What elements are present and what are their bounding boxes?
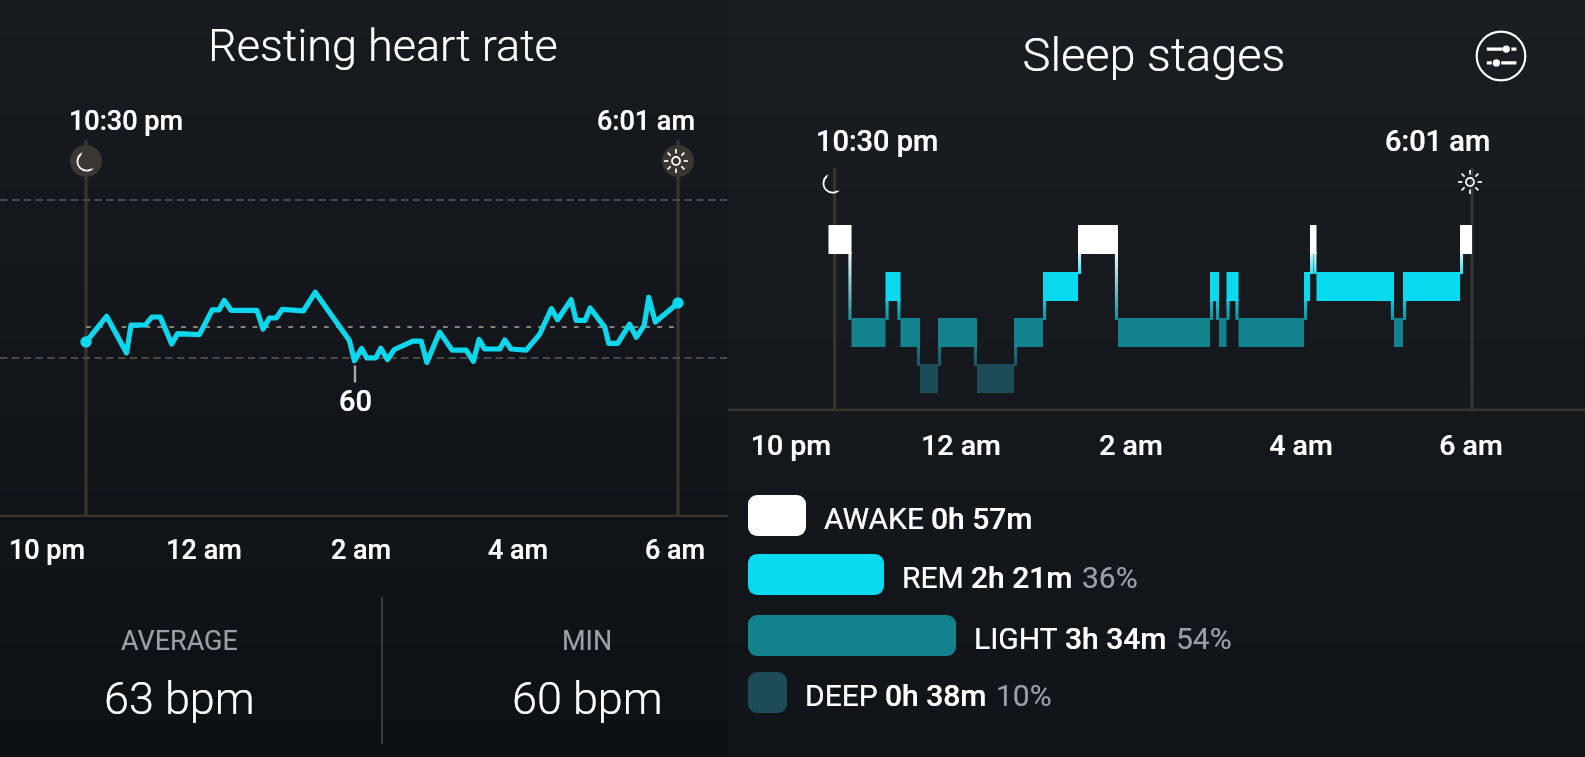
staticText: 54% bbox=[1176, 621, 1232, 656]
staticText: Resting heart rate bbox=[183, 19, 583, 72]
staticText: 12 am bbox=[114, 534, 294, 566]
staticText: 6:01 am bbox=[597, 105, 695, 137]
staticText: 2 am bbox=[1041, 429, 1221, 462]
staticText: 10 pm bbox=[701, 429, 881, 462]
staticText: Sleep stages bbox=[954, 27, 1354, 82]
staticText: AWAKE bbox=[824, 501, 924, 536]
staticText: LIGHT bbox=[974, 621, 1058, 656]
staticText: 6 am bbox=[585, 534, 765, 566]
staticText: 0h 38m bbox=[885, 678, 987, 713]
staticText: 6:01 am bbox=[1385, 124, 1491, 158]
staticText: 10:30 pm bbox=[69, 105, 183, 137]
staticText: MIN bbox=[562, 625, 613, 657]
staticText: 4 am bbox=[428, 534, 608, 566]
staticText: 4 am bbox=[1211, 429, 1391, 462]
button[interactable]: REM bbox=[748, 554, 1138, 595]
staticText: 12 am bbox=[871, 429, 1051, 462]
button[interactable]: LIGHT bbox=[748, 615, 1232, 656]
staticText: 2h 21m bbox=[971, 560, 1073, 595]
staticText: REM bbox=[902, 560, 964, 595]
staticText: 3h 34m bbox=[1065, 621, 1167, 656]
button[interactable]: DEEP bbox=[748, 672, 1052, 713]
button[interactable]: AVERAGE bbox=[0, 625, 379, 725]
staticText: 10:30 pm bbox=[816, 124, 939, 158]
staticText: 6 am bbox=[1381, 429, 1561, 462]
staticText: DEEP bbox=[805, 678, 878, 713]
staticText: 60 bbox=[339, 384, 372, 418]
staticText: 10 pm bbox=[0, 534, 137, 566]
staticText: 60 bpm bbox=[512, 672, 663, 725]
staticText: 0h 57m bbox=[931, 501, 1033, 536]
button[interactable]: Sleep settings bbox=[1475, 30, 1527, 82]
staticText: 10% bbox=[996, 678, 1052, 713]
staticText: AVERAGE bbox=[121, 625, 238, 657]
staticText: 63 bpm bbox=[104, 672, 255, 725]
button[interactable]: MIN bbox=[387, 625, 787, 725]
staticText: 2 am bbox=[271, 534, 451, 566]
button[interactable]: AWAKE bbox=[748, 495, 1033, 536]
staticText: 36% bbox=[1082, 560, 1138, 595]
